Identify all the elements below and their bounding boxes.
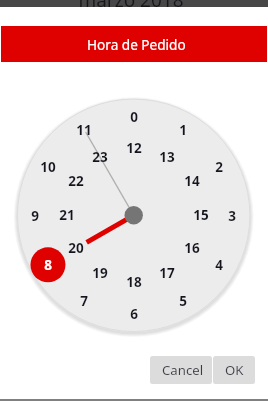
staticText: 22 xyxy=(68,172,84,190)
staticText: 4 xyxy=(215,256,223,274)
staticText: 20 xyxy=(68,239,84,257)
staticText: 3 xyxy=(228,207,236,225)
staticText: 11 xyxy=(76,121,92,139)
staticText: 15 xyxy=(193,206,209,224)
staticText: 18 xyxy=(126,273,142,291)
staticText: marzo 2018 xyxy=(78,0,184,7)
staticText: 21 xyxy=(59,206,75,224)
staticText: 5 xyxy=(179,292,187,310)
staticText: Cancel xyxy=(162,361,204,379)
staticText: OK xyxy=(225,361,244,379)
staticText: 7 xyxy=(80,292,88,310)
staticText: 14 xyxy=(184,172,200,190)
staticText: 2 xyxy=(215,158,223,176)
staticText: 0 xyxy=(130,108,138,126)
button[interactable]: OK xyxy=(213,356,255,384)
staticText: 1 xyxy=(179,121,187,139)
staticText: 23 xyxy=(92,148,108,166)
button[interactable]: Hora de Pedido xyxy=(1,26,267,62)
staticText: Hora de Pedido xyxy=(87,35,186,54)
staticText: 12 xyxy=(126,139,142,157)
staticText: 19 xyxy=(92,264,108,282)
staticText: 8 xyxy=(44,256,52,274)
staticText: 16 xyxy=(184,239,200,257)
staticText: 17 xyxy=(159,264,175,282)
staticText: 10 xyxy=(40,158,56,176)
button[interactable]: Cancel xyxy=(150,356,212,384)
staticText: 13 xyxy=(159,148,175,166)
staticText: 9 xyxy=(31,207,39,225)
staticText: 6 xyxy=(130,305,138,323)
